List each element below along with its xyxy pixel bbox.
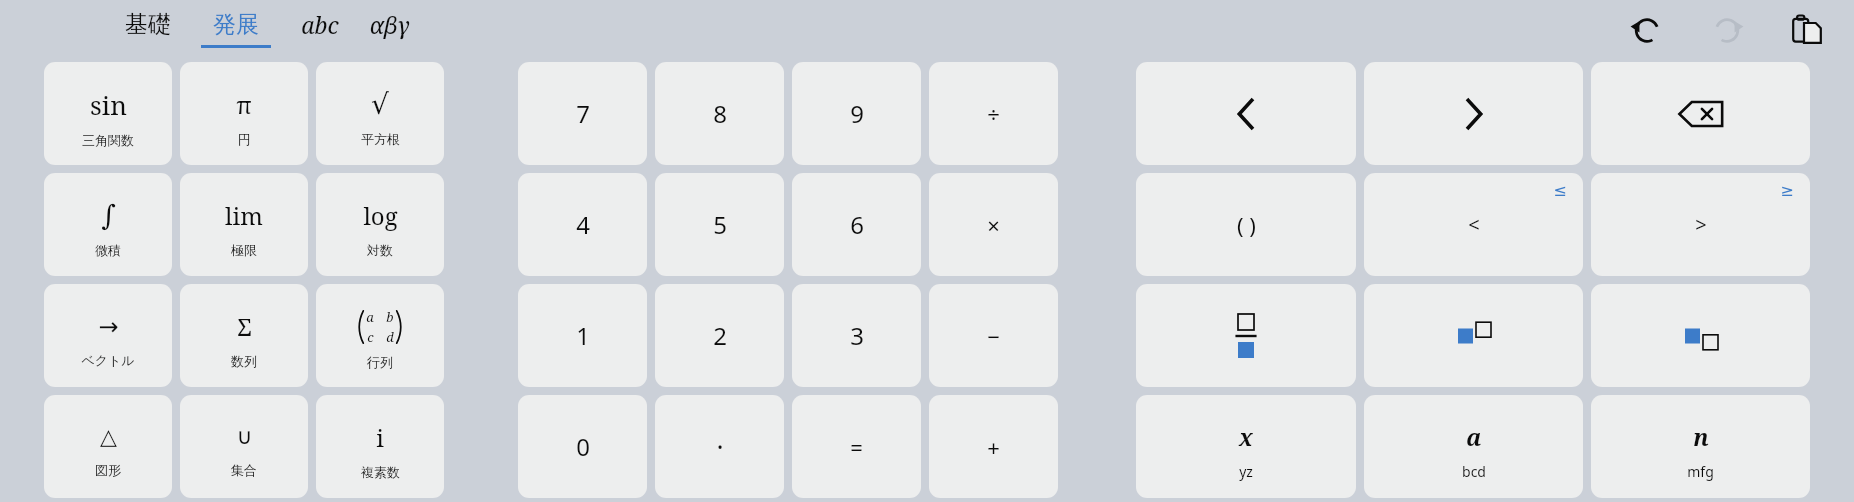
staticText: 1 [576, 319, 590, 352]
button[interactable]: 削除 [1591, 62, 1810, 165]
staticText: abc [301, 9, 339, 40]
button[interactable]: 図形 [44, 395, 172, 498]
button[interactable]: 9 [792, 62, 921, 165]
button[interactable]: 分数 [1136, 284, 1356, 387]
staticText: • [717, 437, 723, 457]
staticText: = [850, 432, 863, 462]
staticText: mfg [1687, 462, 1714, 481]
button[interactable]: 6 [792, 173, 921, 276]
button[interactable]: • [655, 395, 784, 498]
staticText: log [363, 199, 398, 232]
button[interactable]: やり直す [1700, 2, 1754, 56]
button[interactable]: = [792, 395, 921, 498]
staticText: 7 [576, 97, 590, 130]
button[interactable]: 基礎 [125, 10, 171, 48]
staticText: yz [1239, 462, 1253, 481]
staticText: 図形 [95, 462, 121, 478]
staticText: > [1695, 211, 1707, 238]
button[interactable]: 7 [518, 62, 647, 165]
staticText: 発展 [213, 10, 259, 39]
button[interactable]: 0 [518, 395, 647, 498]
button[interactable]: x [1136, 395, 1356, 498]
staticText: n [1693, 421, 1709, 452]
staticText: → [98, 313, 119, 341]
staticText: 円 [238, 131, 251, 147]
staticText: ÷ [987, 99, 1000, 129]
staticText: bcd [1462, 462, 1486, 481]
button[interactable]: 対数 [316, 173, 444, 276]
button[interactable]: 2 [655, 284, 784, 387]
button[interactable]: 貼り付け [1780, 2, 1834, 56]
button[interactable]: 括弧 [1136, 173, 1356, 276]
button[interactable]: 5 [655, 173, 784, 276]
button[interactable]: カーソル左 [1136, 62, 1356, 165]
button[interactable]: 行列 [316, 284, 444, 387]
button[interactable]: 微積 [44, 173, 172, 276]
staticText: 集合 [231, 462, 257, 478]
button[interactable]: 元に戻す [1620, 2, 1674, 56]
button[interactable]: 発展 [201, 10, 271, 48]
staticText: 極限 [231, 242, 257, 258]
staticText: ( ) [1237, 210, 1256, 240]
button[interactable]: > [1591, 173, 1810, 276]
staticText: αβγ [369, 9, 410, 40]
button[interactable]: 平方根 [316, 62, 444, 165]
button[interactable]: 3 [792, 284, 921, 387]
staticText: ∫ [101, 199, 116, 232]
staticText: ≤ [1553, 181, 1567, 200]
staticText: 9 [850, 97, 864, 130]
staticText: 0 [576, 430, 590, 463]
button[interactable]: < [1364, 173, 1583, 276]
staticText: x [1239, 421, 1253, 452]
staticText: 平方根 [361, 131, 400, 147]
staticText: 5 [713, 208, 727, 241]
staticText: π [236, 88, 252, 121]
button[interactable]: ベクトル [44, 284, 172, 387]
staticText: i [376, 421, 384, 454]
staticText: ∪ [236, 424, 253, 450]
staticText: d [386, 328, 394, 346]
staticText: + [987, 432, 1000, 462]
staticText: √ [371, 88, 389, 121]
button[interactable]: 累乗 [1364, 284, 1583, 387]
staticText: 4 [576, 208, 590, 241]
button[interactable]: 添字 [1591, 284, 1810, 387]
button[interactable]: 4 [518, 173, 647, 276]
staticText: ベクトル [81, 352, 135, 368]
staticText: a [366, 308, 374, 326]
button[interactable]: 円 [180, 62, 308, 165]
staticText: sin [90, 87, 127, 122]
staticText: < [1468, 211, 1480, 238]
staticText: ≥ [1780, 181, 1794, 200]
button[interactable]: × [929, 173, 1058, 276]
staticText: 微積 [95, 242, 121, 258]
button[interactable]: + [929, 395, 1058, 498]
staticText: Σ [237, 310, 252, 343]
button[interactable]: カーソル右 [1364, 62, 1583, 165]
staticText: 3 [850, 319, 864, 352]
button[interactable]: − [929, 284, 1058, 387]
staticText: × [987, 210, 1000, 240]
staticText: 数列 [231, 353, 257, 369]
button[interactable]: abc [301, 9, 339, 49]
staticText: lim [225, 199, 263, 232]
staticText: 三角関数 [82, 132, 134, 148]
button[interactable]: ÷ [929, 62, 1058, 165]
staticText: a [1466, 421, 1482, 452]
button[interactable]: 1 [518, 284, 647, 387]
button[interactable]: 複素数 [316, 395, 444, 498]
button[interactable]: 極限 [180, 173, 308, 276]
staticText: b [386, 308, 394, 326]
button[interactable]: 8 [655, 62, 784, 165]
button[interactable]: αβγ [369, 9, 410, 49]
button[interactable]: a [1364, 395, 1583, 498]
button[interactable]: 集合 [180, 395, 308, 498]
button[interactable]: n [1591, 395, 1810, 498]
button[interactable]: 数列 [180, 284, 308, 387]
button[interactable]: 三角関数 [44, 62, 172, 165]
staticText: 複素数 [361, 464, 400, 480]
staticText: 8 [713, 97, 727, 130]
staticText: c [367, 328, 374, 346]
staticText: 6 [850, 208, 864, 241]
staticText: 基礎 [125, 10, 171, 39]
